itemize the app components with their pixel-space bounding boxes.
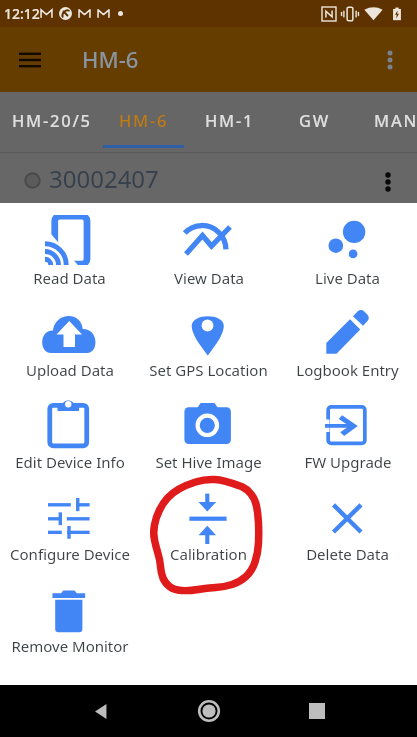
button[interactable]: HM-1 [186, 92, 273, 152]
button[interactable]: Live Data [278, 203, 417, 295]
staticText: Upload Data [26, 360, 114, 380]
button[interactable]: Upload Data [0, 295, 139, 387]
button[interactable]: Device menu [366, 160, 410, 204]
staticText: 30002407 [49, 162, 159, 195]
staticText: Set Hive Image [155, 452, 262, 472]
button[interactable]: Configure Device [0, 479, 139, 571]
staticText: View Data [174, 268, 244, 288]
button[interactable]: MAN [353, 92, 417, 152]
button[interactable]: Back [80, 691, 120, 731]
staticText: FW Upgrade [304, 452, 392, 472]
button[interactable]: Remove Monitor [0, 571, 139, 663]
button[interactable]: Logbook Entry [278, 295, 417, 387]
staticText: Configure Device [10, 544, 130, 564]
staticText: HM-6 [82, 44, 139, 74]
staticText: Live Data [315, 268, 380, 288]
button[interactable]: Set Hive Image [139, 387, 278, 479]
button[interactable]: Recent apps [297, 691, 337, 731]
button[interactable]: More options [368, 38, 412, 82]
button[interactable]: GW [272, 92, 357, 152]
staticText: HM-1 [205, 109, 255, 131]
staticText: Edit Device Info [15, 452, 125, 472]
button[interactable]: HM-20/5 [0, 92, 103, 152]
button[interactable]: HM-6 [103, 92, 184, 152]
button[interactable]: 30002407 [0, 152, 417, 203]
staticText: MAN [374, 109, 417, 131]
staticText: Calibration [170, 544, 247, 564]
staticText: HM-20/5 [12, 109, 92, 131]
button[interactable]: Read Data [0, 203, 139, 295]
staticText: 12:12 [4, 4, 40, 23]
button[interactable]: Home [187, 689, 231, 733]
staticText: Set GPS Location [149, 360, 268, 380]
button[interactable]: FW Upgrade [278, 387, 417, 479]
staticText: Delete Data [306, 544, 389, 564]
staticText: Remove Monitor [11, 636, 129, 656]
staticText: GW [299, 109, 331, 131]
button[interactable]: Set GPS Location [139, 295, 278, 387]
button[interactable]: Open navigation menu [8, 38, 52, 82]
staticText: HM-6 [119, 109, 169, 131]
button[interactable]: Edit Device Info [0, 387, 139, 479]
button[interactable]: Calibration [139, 479, 278, 571]
staticText: Read Data [33, 268, 106, 288]
staticText: Logbook Entry [296, 360, 399, 380]
button[interactable]: View Data [139, 203, 278, 295]
button[interactable]: Delete Data [278, 479, 417, 571]
